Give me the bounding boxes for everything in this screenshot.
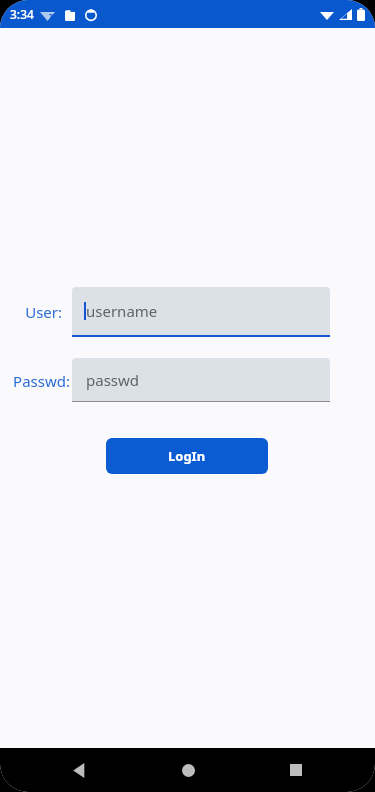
button[interactable]: Recent apps: [279, 753, 313, 787]
button[interactable]: Back: [62, 753, 96, 787]
staticText: 3:34: [10, 6, 34, 22]
button[interactable]: Home: [171, 753, 205, 787]
staticText: ?: [49, 11, 53, 22]
staticText: Passwd:: [0, 371, 70, 391]
staticText: LogIn: [168, 447, 206, 465]
staticText: User:: [0, 302, 62, 322]
button[interactable]: LogIn: [106, 438, 268, 474]
staticText: username: [86, 301, 158, 321]
button[interactable]: username: [72, 287, 330, 337]
staticText: passwd: [86, 370, 140, 390]
button[interactable]: passwd: [72, 358, 330, 402]
